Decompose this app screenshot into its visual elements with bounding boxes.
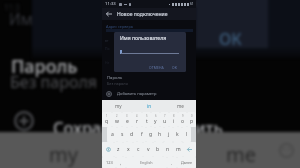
staticText: in	[147, 103, 152, 109]
staticText: s	[121, 131, 124, 138]
staticText: x	[127, 146, 130, 153]
staticText: Адрес сервера	[106, 24, 133, 29]
button[interactable]: s	[117, 127, 127, 142]
button[interactable]: English	[126, 157, 167, 168]
staticText: a	[111, 131, 114, 138]
staticText: 2	[116, 114, 118, 118]
button[interactable]: Далее	[177, 157, 196, 168]
button[interactable]	[170, 63, 181, 70]
staticText: g	[149, 131, 153, 138]
button[interactable]: 5	[142, 112, 151, 127]
button[interactable]: v	[143, 142, 153, 157]
staticText: e	[126, 118, 129, 125]
staticText: 5	[146, 114, 148, 118]
staticText: Без пароля	[10, 71, 98, 93]
staticText: h	[158, 131, 162, 138]
staticText: 6	[155, 114, 157, 118]
staticText: Пароль	[11, 54, 78, 79]
button[interactable]: ,	[116, 157, 126, 168]
button[interactable]: n	[163, 142, 173, 157]
button[interactable]: x	[123, 142, 133, 157]
staticText: r	[136, 118, 139, 125]
staticText: Без пароля	[107, 81, 128, 86]
button[interactable]: 123	[102, 157, 116, 168]
button[interactable]: b	[153, 142, 163, 157]
staticText: 9	[182, 114, 184, 118]
button[interactable]: 6	[151, 112, 160, 127]
staticText: c	[137, 146, 140, 153]
staticText: Им	[9, 8, 33, 29]
staticText: ОК	[172, 65, 178, 70]
staticText: u	[163, 118, 167, 125]
staticText: 0	[191, 114, 193, 118]
button[interactable]	[147, 63, 165, 70]
button[interactable]: h	[155, 127, 164, 142]
button[interactable]: me	[165, 100, 196, 112]
staticText: Добавить параметр	[117, 91, 157, 97]
button[interactable]: my	[102, 100, 134, 112]
button[interactable]: g	[146, 127, 155, 142]
staticText: 11:33	[105, 1, 116, 7]
staticText: вт	[105, 38, 109, 43]
button[interactable]: l	[182, 127, 191, 142]
staticText: i	[173, 118, 175, 125]
button[interactable]: m	[173, 142, 183, 157]
staticText: 61	[190, 2, 194, 6]
staticText: 3	[126, 114, 128, 118]
staticText: me	[226, 141, 256, 168]
button[interactable]: z	[114, 142, 123, 157]
button[interactable]: .	[167, 157, 177, 168]
staticText: k	[176, 131, 179, 138]
staticText: p	[190, 118, 194, 125]
button[interactable]: 1	[102, 112, 112, 127]
staticText: q	[105, 118, 109, 125]
staticText: .	[171, 160, 173, 166]
staticText: 4	[136, 114, 138, 118]
staticText: 123	[106, 160, 113, 165]
staticText: ОТМЕНА	[149, 65, 164, 70]
staticText: v	[147, 146, 150, 153]
staticText: Сохран	[53, 116, 112, 138]
button[interactable]: 2	[112, 112, 122, 127]
button[interactable]: 3	[122, 112, 132, 127]
button[interactable]: 0	[187, 112, 196, 127]
staticText: 8	[173, 114, 175, 118]
button[interactable]: 8	[169, 112, 178, 127]
button[interactable]: k	[173, 127, 182, 142]
staticText: j	[168, 131, 170, 138]
button[interactable]: j	[164, 127, 173, 142]
button[interactable]: Shift	[102, 142, 114, 157]
staticText: t	[146, 118, 148, 125]
staticText: Далее	[181, 160, 192, 165]
staticText: 1	[106, 114, 108, 118]
staticText: Новое подключение	[117, 11, 168, 18]
staticText: Имя пользователя	[120, 35, 167, 42]
button[interactable]: 9	[178, 112, 187, 127]
staticText: b	[156, 146, 160, 153]
staticText: my	[115, 103, 122, 109]
button[interactable]: c	[133, 142, 143, 157]
staticText: l	[186, 131, 188, 138]
button[interactable]: in	[134, 100, 165, 112]
staticText: Пароль	[107, 75, 123, 81]
button[interactable]: d	[127, 127, 137, 142]
staticText: ить	[195, 116, 223, 138]
staticText: n	[166, 146, 170, 153]
staticText: ОК	[219, 28, 242, 50]
staticText: o	[181, 118, 185, 125]
staticText: 7	[164, 114, 166, 118]
button[interactable]: 4	[132, 112, 142, 127]
staticText: f	[141, 131, 143, 138]
staticText: z	[117, 146, 120, 153]
button[interactable]: Backspace	[183, 142, 196, 157]
button[interactable]: Добавить параметр	[106, 91, 157, 97]
staticText: d	[130, 131, 134, 138]
button[interactable]: a	[107, 127, 117, 142]
staticText: m	[176, 146, 181, 153]
staticText: Не	[105, 60, 110, 65]
button[interactable]: f	[137, 127, 146, 142]
button[interactable]: Back	[102, 8, 116, 20]
staticText: w	[115, 118, 119, 125]
button[interactable]: 7	[160, 112, 169, 127]
